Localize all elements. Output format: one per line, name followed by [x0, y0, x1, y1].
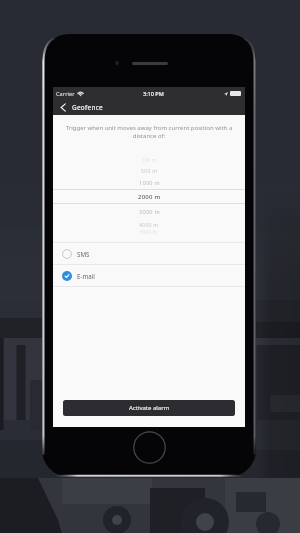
- staticText: 3:10 PM: [143, 90, 164, 97]
- button[interactable]: 3000 m: [53, 206, 245, 218]
- staticText: Activate alarm: [129, 404, 170, 412]
- staticText: SMS: [77, 250, 90, 258]
- button[interactable]: Back: [57, 101, 70, 114]
- staticText: 100 m: [142, 157, 157, 163]
- staticText: 3000 m: [139, 208, 160, 216]
- staticText: Trigger when unit moves away from curren…: [62, 124, 236, 140]
- staticText: 500 m: [141, 167, 158, 174]
- staticText: 2000 m: [138, 193, 161, 201]
- button[interactable]: Activate alarm: [63, 400, 235, 416]
- button[interactable]: SMS: [53, 243, 245, 264]
- button[interactable]: 4000 m: [53, 218, 245, 230]
- staticText: 5000 m: [140, 229, 158, 235]
- button[interactable]: 1000 m: [53, 177, 245, 189]
- button[interactable]: 2000 m: [53, 191, 245, 203]
- staticText: Geofence: [72, 103, 103, 112]
- button[interactable]: E-mail: [53, 265, 245, 286]
- staticText: Carrier: [56, 90, 75, 97]
- staticText: 1000 m: [139, 179, 160, 187]
- staticText: 4000 m: [139, 221, 159, 228]
- staticText: E-mail: [77, 272, 95, 280]
